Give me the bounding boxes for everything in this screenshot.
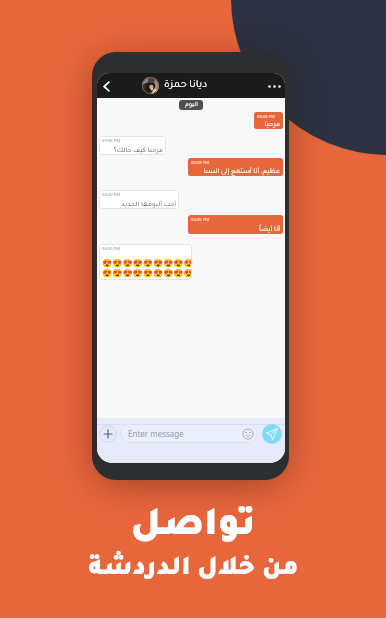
- staticText: 04:00 PM: [102, 192, 121, 198]
- button[interactable]: 03:58 PM: [188, 158, 283, 176]
- staticText: تواصل: [130, 508, 256, 548]
- staticText: Enter message: [128, 428, 184, 439]
- staticText: ديانا حمزة: [164, 80, 208, 91]
- button[interactable]: 03:58 PM: [99, 136, 166, 155]
- button[interactable]: 04:05 PM: [188, 215, 283, 234]
- button[interactable]: Send: [262, 424, 282, 444]
- staticText: 04:05 PM: [191, 217, 210, 223]
- staticText: 03:56 PM: [257, 114, 276, 120]
- staticText: مرحبا: [264, 121, 280, 128]
- button[interactable]: Enter message: [120, 424, 258, 443]
- button[interactable]: 03:56 PM: [254, 112, 283, 129]
- button[interactable]: 04:06 PM: [99, 244, 192, 280]
- staticText: 😍😍😍😍😍😍😍😍😍😍: [102, 258, 192, 268]
- staticText: مرحبا كيف حالك؟: [113, 147, 163, 154]
- staticText: 03:58 PM: [191, 160, 210, 166]
- staticText: عظيم، أنا أستمع إلى الىسا: [203, 168, 280, 175]
- staticText: 04:06 PM: [102, 246, 121, 252]
- button[interactable]: 04:00 PM: [99, 190, 179, 209]
- button[interactable]: Back: [97, 76, 116, 96]
- button[interactable]: More options: [265, 77, 283, 95]
- staticText: اليوم: [185, 102, 198, 109]
- staticText: 03:58 PM: [102, 138, 121, 144]
- staticText: أحب ألبومها الجديد: [121, 201, 176, 208]
- staticText: أنا أيضاً: [259, 226, 280, 233]
- staticText: من خلال الدردشة: [88, 557, 299, 584]
- button[interactable]: Attach: [99, 425, 117, 443]
- staticText: 😍😍😍😍😍😍😍😍😍😍: [102, 268, 192, 278]
